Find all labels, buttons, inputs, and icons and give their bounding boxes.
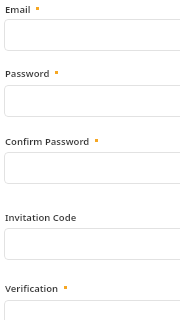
button[interactable]: Verification	[5, 282, 59, 294]
staticText: Confirm Password	[5, 135, 90, 147]
button[interactable]: Confirm Password	[4, 152, 180, 184]
button[interactable]: Verification	[4, 300, 180, 320]
staticText: Email	[5, 3, 31, 15]
staticText: Password	[5, 67, 50, 79]
button[interactable]: Invitation Code	[5, 211, 77, 223]
staticText: Invitation Code	[5, 211, 77, 223]
button[interactable]: Invitation Code	[4, 228, 180, 260]
staticText: Verification	[5, 282, 59, 294]
button[interactable]: Password	[4, 85, 180, 117]
button[interactable]: Confirm Password	[5, 135, 90, 147]
button[interactable]: Email	[5, 3, 31, 15]
button[interactable]: Password	[5, 67, 50, 79]
button[interactable]: Email	[4, 19, 180, 51]
